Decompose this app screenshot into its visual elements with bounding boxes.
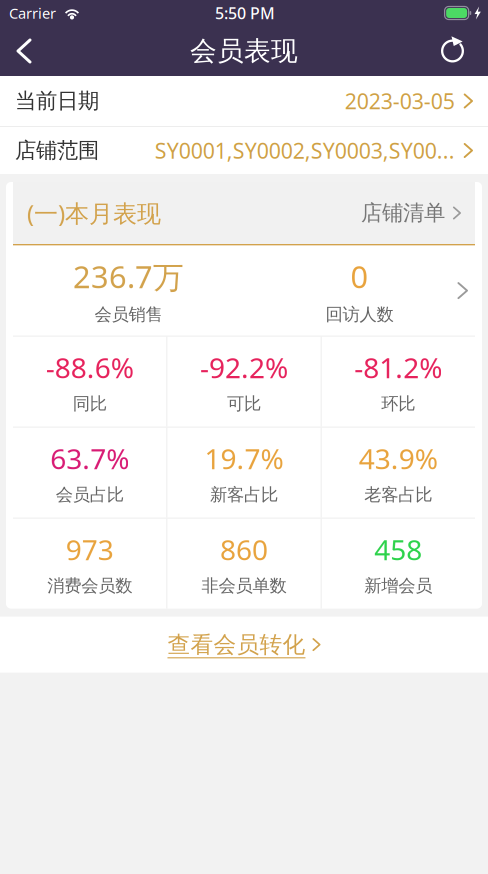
staticText: SY0001,SY0002,SY0003,SY00...	[155, 136, 455, 165]
staticText: 新增会员	[364, 575, 432, 596]
staticText: -88.6%	[46, 349, 134, 386]
staticText: 2023-03-05	[345, 87, 455, 115]
staticText: 消费会员数	[47, 575, 132, 596]
staticText: 同比	[73, 393, 107, 414]
staticText: 环比	[381, 393, 415, 414]
staticText: 当前日期	[15, 88, 99, 114]
staticText: 973	[66, 531, 114, 568]
button[interactable]: 店铺清单	[361, 200, 461, 226]
staticText: 0	[350, 256, 368, 297]
staticText: 5:50 PM	[215, 2, 275, 24]
staticText: 回访人数	[325, 304, 393, 325]
staticText: 店铺范围	[15, 137, 99, 164]
staticText: 会员占比	[56, 484, 124, 505]
staticText: 236.7万	[73, 256, 184, 297]
staticText: 860	[220, 531, 268, 568]
staticText: 19.7%	[204, 440, 283, 477]
staticText: 458	[374, 531, 422, 568]
staticText: Carrier	[9, 3, 56, 23]
staticText: 非会员单数	[201, 575, 286, 596]
staticText: 查看会员转化	[167, 631, 305, 658]
staticText: 63.7%	[50, 440, 129, 477]
staticText: 可比	[227, 393, 261, 414]
button[interactable]: Back	[1, 26, 47, 76]
button[interactable]: 当前日期	[0, 76, 488, 126]
staticText: 会员表现	[190, 35, 298, 67]
staticText: 43.9%	[359, 440, 438, 477]
button[interactable]: 236.7万	[13, 246, 475, 336]
button[interactable]: Refresh	[441, 26, 487, 76]
staticText: (一)本月表现	[27, 197, 161, 229]
staticText: 新客占比	[210, 484, 278, 505]
staticText: 老客占比	[364, 484, 432, 505]
button[interactable]: 查看会员转化	[0, 617, 488, 673]
staticText: 会员销售	[94, 304, 162, 325]
staticText: -81.2%	[354, 349, 442, 386]
button[interactable]: 店铺范围	[0, 127, 488, 174]
staticText: -92.2%	[200, 349, 288, 386]
staticText: 店铺清单	[361, 200, 445, 226]
